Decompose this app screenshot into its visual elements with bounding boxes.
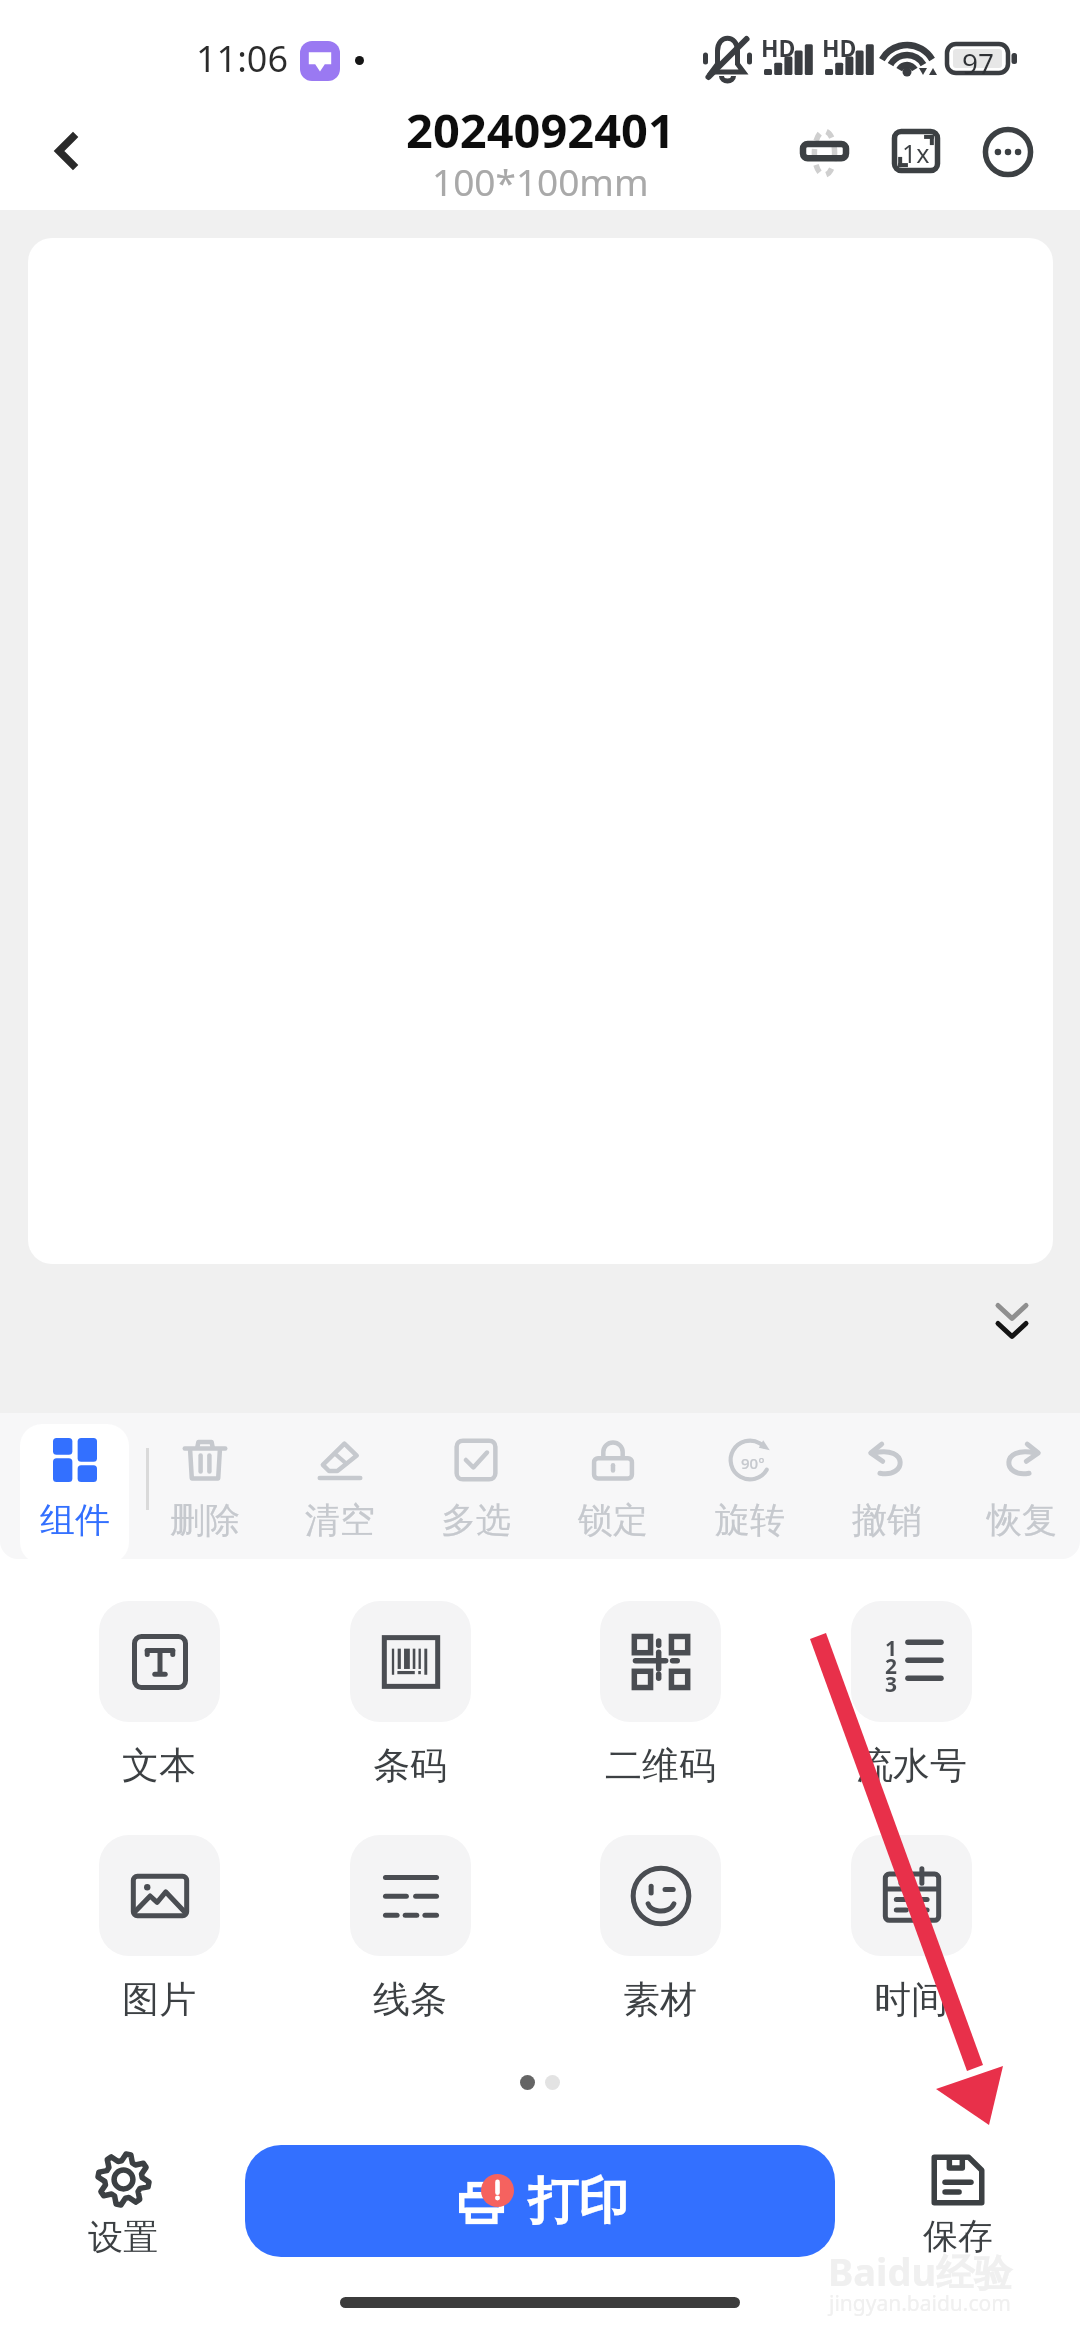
button[interactable]: 素材 <box>580 1835 740 2020</box>
button[interactable]: 时间 <box>831 1835 991 2020</box>
staticText: HD <box>822 32 857 63</box>
staticText: 图片 <box>122 1976 196 2023</box>
button[interactable]: 90° <box>686 1424 814 1564</box>
staticText: 3 <box>885 1670 898 1699</box>
staticText: 素材 <box>623 1976 697 2023</box>
button[interactable]: 删除 <box>141 1424 269 1564</box>
staticText: 1 <box>885 1634 898 1663</box>
button[interactable]: Back <box>21 105 111 195</box>
staticText: 时间 <box>874 1976 948 2023</box>
staticText: 1x <box>902 136 930 170</box>
button[interactable]: 组件 <box>20 1424 129 1564</box>
button[interactable]: 图片 <box>79 1835 239 2020</box>
button[interactable]: Zoom 1x <box>864 99 968 203</box>
button[interactable]: 文本 <box>79 1601 239 1786</box>
staticText: 多选 <box>441 1498 511 1542</box>
button[interactable]: 恢复 <box>958 1424 1080 1564</box>
staticText: 文本 <box>122 1742 196 1789</box>
button[interactable]: More options <box>956 100 1060 204</box>
staticText: jingyan.baidu.com <box>829 2289 1011 2318</box>
staticText: 2024092401 <box>406 98 675 162</box>
button[interactable]: 1 <box>831 1601 991 1786</box>
staticText: 打印 <box>528 2170 628 2233</box>
button[interactable]: 撤销 <box>823 1424 951 1564</box>
staticText: 97 <box>962 44 995 82</box>
staticText: 锁定 <box>578 1498 648 1542</box>
staticText: 90° <box>741 1453 765 1473</box>
staticText: Baidu经验 <box>828 2245 1013 2297</box>
staticText: 100*100mm <box>432 156 649 206</box>
button[interactable]: 打印 <box>245 2145 835 2257</box>
staticText: HD <box>761 32 796 63</box>
staticText: 流水号 <box>856 1742 967 1789</box>
staticText: 条码 <box>373 1742 447 1789</box>
staticText: 组件 <box>40 1498 110 1542</box>
staticText: 设置 <box>88 2215 158 2259</box>
staticText: 二维码 <box>605 1742 716 1789</box>
button[interactable]: 线条 <box>330 1835 490 2020</box>
staticText: 线条 <box>373 1976 447 2023</box>
staticText: 保存 <box>923 2214 993 2258</box>
button[interactable]: 设置 <box>58 2140 188 2264</box>
staticText: 删除 <box>170 1498 240 1542</box>
button[interactable]: 条码 <box>330 1601 490 1786</box>
button[interactable]: Collapse canvas <box>966 1284 1058 1376</box>
button[interactable]: 清空 <box>276 1424 404 1564</box>
button[interactable]: 多选 <box>412 1424 540 1564</box>
button[interactable]: 保存 <box>893 2140 1023 2264</box>
button[interactable]: 锁定 <box>549 1424 677 1564</box>
staticText: 2 <box>885 1652 898 1681</box>
staticText: 撤销 <box>852 1498 922 1542</box>
staticText: 清空 <box>305 1498 375 1542</box>
button[interactable]: Flip canvas <box>772 101 876 205</box>
staticText: 11:06 <box>196 34 289 83</box>
button[interactable]: 二维码 <box>580 1601 740 1786</box>
staticText: 恢复 <box>987 1498 1057 1542</box>
staticText: 旋转 <box>715 1498 785 1542</box>
